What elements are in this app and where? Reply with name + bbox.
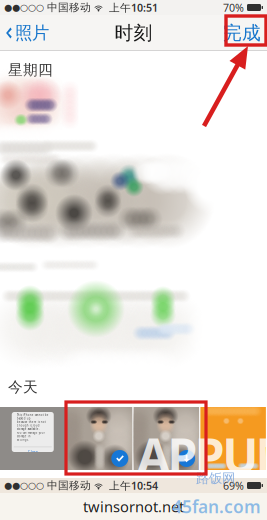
staticText: APPUN	[137, 423, 267, 487]
staticText: 中国移动	[44, 1, 94, 14]
staticText: This iPhone cannot be backed up because …	[17, 413, 49, 441]
button[interactable]: Photo, downloading from iCloud	[134, 407, 199, 470]
staticText: 70%	[223, 0, 244, 15]
staticText: 上午10:54	[109, 478, 158, 493]
staticText: ●●○○○	[4, 2, 44, 13]
staticText: 45fan.com	[172, 495, 261, 518]
staticText: 路饭网	[196, 470, 235, 486]
staticText: Not Enough Storage	[21, 401, 45, 411]
button[interactable]: Screenshot: Not Enough Storage	[0, 407, 65, 470]
staticText: 上午10:51	[109, 0, 158, 15]
button[interactable]: 完成	[215, 15, 267, 51]
staticText: ●●○○○	[4, 480, 44, 491]
button[interactable]: Photo	[200, 407, 266, 470]
staticText: 今天	[8, 378, 38, 396]
staticText: twinsornot.net	[83, 497, 184, 516]
staticText: Close	[28, 449, 38, 454]
button[interactable]: Selected photo	[67, 407, 132, 470]
staticText: 完成	[223, 21, 261, 44]
button[interactable]: 照片	[0, 15, 57, 51]
staticText: 69%	[223, 478, 244, 493]
staticText: 星期四	[8, 61, 53, 79]
staticText: 中国移动	[44, 479, 94, 492]
staticText: 时刻	[114, 21, 152, 44]
staticText: 照片	[15, 22, 49, 44]
